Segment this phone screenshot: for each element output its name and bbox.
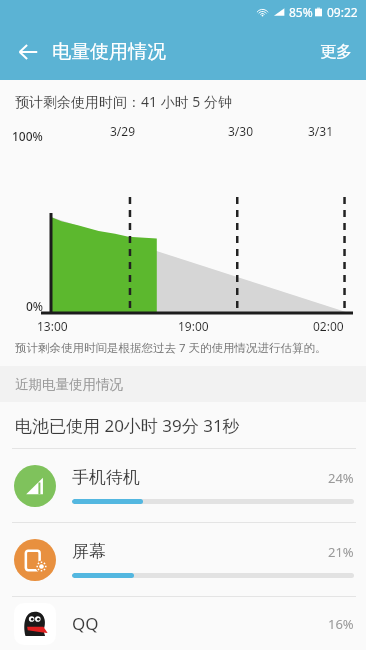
staticText: 21% — [328, 543, 354, 561]
staticText: 13:00 — [37, 318, 68, 334]
button[interactable]: Back — [4, 28, 52, 76]
button[interactable]: 手机待机 — [0, 449, 366, 522]
button[interactable]: 更多 — [306, 30, 366, 74]
staticText: 近期电量使用情况 — [15, 376, 123, 393]
button[interactable]: QQ — [0, 597, 366, 650]
staticText: 屏幕 — [72, 541, 328, 562]
staticText: 3/31 — [308, 123, 334, 139]
staticText: 3/30 — [228, 123, 254, 139]
staticText: 100% — [12, 128, 43, 144]
staticText: QQ — [72, 612, 328, 635]
staticText: 09:22 — [327, 4, 358, 20]
staticText: 85% — [289, 4, 313, 20]
staticText: 预计剩余使用时间：41 小时 5 分钟 — [15, 92, 232, 111]
staticText: 0% — [26, 298, 44, 314]
staticText: 02:00 — [313, 318, 344, 334]
button[interactable]: 屏幕 — [0, 523, 366, 596]
staticText: 电量使用情况 — [52, 40, 166, 64]
staticText: 16% — [328, 615, 354, 633]
staticText: 3/29 — [110, 123, 136, 139]
staticText: 24% — [328, 469, 354, 487]
staticText: 19:00 — [178, 318, 209, 334]
staticText: 手机待机 — [72, 467, 328, 488]
staticText: 预计剩余使用时间是根据您过去 7 天的使用情况进行估算的。 — [15, 340, 354, 356]
staticText: 更多 — [320, 42, 352, 62]
staticText: 电池已使用 20小时 39分 31秒 — [15, 414, 240, 437]
